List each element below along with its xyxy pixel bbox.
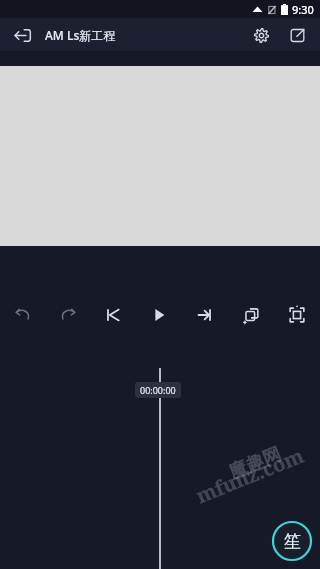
staticText: 魔趣网 — [226, 443, 284, 484]
button[interactable]: Settings — [247, 21, 275, 49]
button[interactable]: Undo — [0, 300, 45, 330]
button[interactable]: Duplicate — [228, 300, 274, 330]
staticText: AM Ls新工程 — [45, 27, 116, 43]
button[interactable]: Skip to start — [90, 300, 136, 330]
button[interactable]: Export — [283, 21, 311, 49]
staticText: mfunz.com — [192, 442, 308, 509]
button[interactable]: Skip to end — [182, 300, 228, 330]
staticText: 00:00:00 — [140, 384, 176, 396]
button[interactable]: Play — [136, 300, 182, 330]
button[interactable]: Add — [270, 519, 314, 563]
staticText: 笙 — [284, 531, 301, 552]
button[interactable]: Crop — [274, 300, 320, 330]
staticText: 9:30 — [292, 2, 314, 17]
button[interactable]: Redo — [45, 300, 90, 330]
button[interactable]: Back — [9, 22, 35, 48]
